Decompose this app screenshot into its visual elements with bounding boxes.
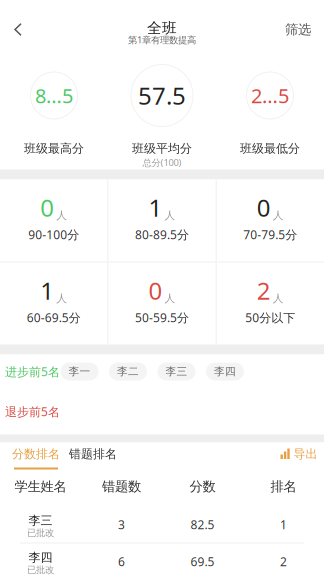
- staticText: 导出: [293, 447, 317, 461]
- staticText: 1: [40, 275, 54, 306]
- staticText: 90-100分: [28, 226, 79, 242]
- staticText: 2: [280, 553, 287, 569]
- staticText: 70-79.5分: [243, 226, 297, 242]
- button[interactable]: 错题排名: [69, 442, 117, 478]
- staticText: 1: [148, 192, 162, 223]
- staticText: 李三: [28, 513, 52, 528]
- staticText: 已批改: [27, 527, 54, 539]
- staticText: 0: [148, 275, 162, 306]
- staticText: 60-69.5分: [27, 309, 81, 325]
- button[interactable]: 李四: [0, 543, 324, 576]
- staticText: 排名: [270, 478, 296, 495]
- staticText: 已批改: [27, 564, 54, 576]
- button[interactable]: 李二: [109, 362, 147, 380]
- staticText: 李二: [117, 365, 139, 378]
- staticText: 人: [56, 209, 67, 222]
- staticText: 班级平均分: [132, 141, 192, 156]
- button[interactable]: 李三: [157, 362, 195, 380]
- staticText: 分数: [189, 478, 215, 495]
- staticText: 班级最高分: [24, 141, 84, 156]
- staticText: 错题数: [102, 478, 141, 495]
- staticText: 人: [164, 292, 175, 305]
- staticText: 人: [273, 292, 284, 305]
- staticText: 人: [164, 209, 175, 222]
- staticText: 李三: [165, 365, 187, 378]
- staticText: 6: [118, 553, 125, 569]
- staticText: 李一: [68, 365, 90, 378]
- button[interactable]: 李三: [0, 506, 324, 542]
- staticText: 50-59.5分: [135, 309, 189, 325]
- staticText: 班级最低分: [240, 141, 300, 156]
- button[interactable]: 导出: [278, 442, 320, 478]
- staticText: 人: [56, 292, 67, 305]
- staticText: 2: [257, 275, 271, 306]
- staticText: 82.5: [190, 516, 214, 532]
- staticText: 1: [280, 516, 287, 532]
- staticText: 80-89.5分: [135, 226, 189, 242]
- staticText: 筛选: [285, 21, 311, 38]
- staticText: 3: [118, 516, 125, 532]
- staticText: 2…5: [251, 82, 289, 109]
- staticText: 李四: [28, 550, 52, 565]
- staticText: 错题排名: [69, 447, 117, 461]
- staticText: 50分以下: [245, 309, 295, 325]
- staticText: 退步前5名: [5, 403, 60, 419]
- button[interactable]: 返回: [0, 19, 36, 39]
- staticText: 全班: [147, 19, 177, 37]
- staticText: 学生姓名: [14, 478, 66, 495]
- staticText: 8…5: [35, 82, 73, 109]
- staticText: 人: [273, 209, 284, 222]
- staticText: 0: [40, 192, 54, 223]
- button[interactable]: 李四: [206, 362, 244, 380]
- staticText: 总分(100): [142, 156, 181, 169]
- button[interactable]: 李一: [60, 362, 98, 380]
- button[interactable]: 分数排名: [8, 442, 64, 478]
- staticText: 分数排名: [12, 447, 60, 461]
- staticText: 0: [257, 192, 271, 223]
- button[interactable]: 筛选: [272, 21, 324, 37]
- staticText: 第1章有理数提高: [128, 33, 196, 46]
- staticText: 李四: [214, 365, 236, 378]
- staticText: 进步前5名: [5, 363, 60, 379]
- staticText: 69.5: [190, 553, 214, 569]
- staticText: 57.5: [138, 80, 186, 111]
